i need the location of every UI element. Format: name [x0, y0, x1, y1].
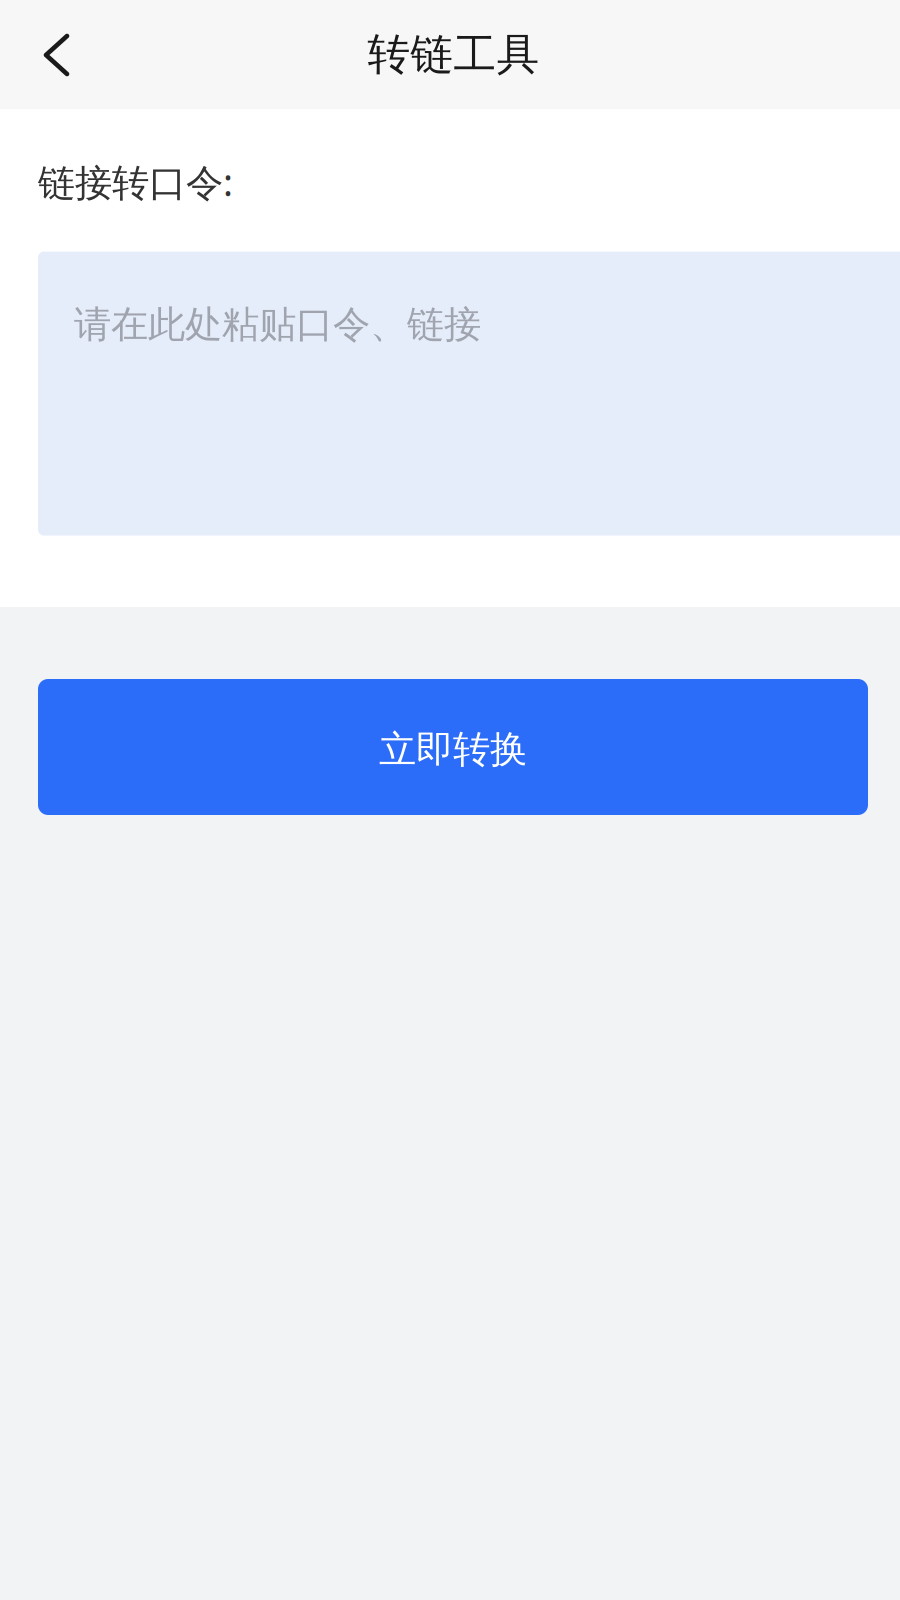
staticText: 立即转换	[379, 727, 527, 772]
staticText: 转链工具	[367, 28, 539, 81]
staticText: 链接转口令:	[38, 157, 233, 207]
button[interactable]: 立即转换	[38, 679, 868, 815]
button[interactable]: Back	[0, 0, 110, 109]
staticText: 请在此处粘贴口令、链接	[74, 302, 481, 347]
button[interactable]: 请在此处粘贴口令、链接	[38, 252, 900, 536]
